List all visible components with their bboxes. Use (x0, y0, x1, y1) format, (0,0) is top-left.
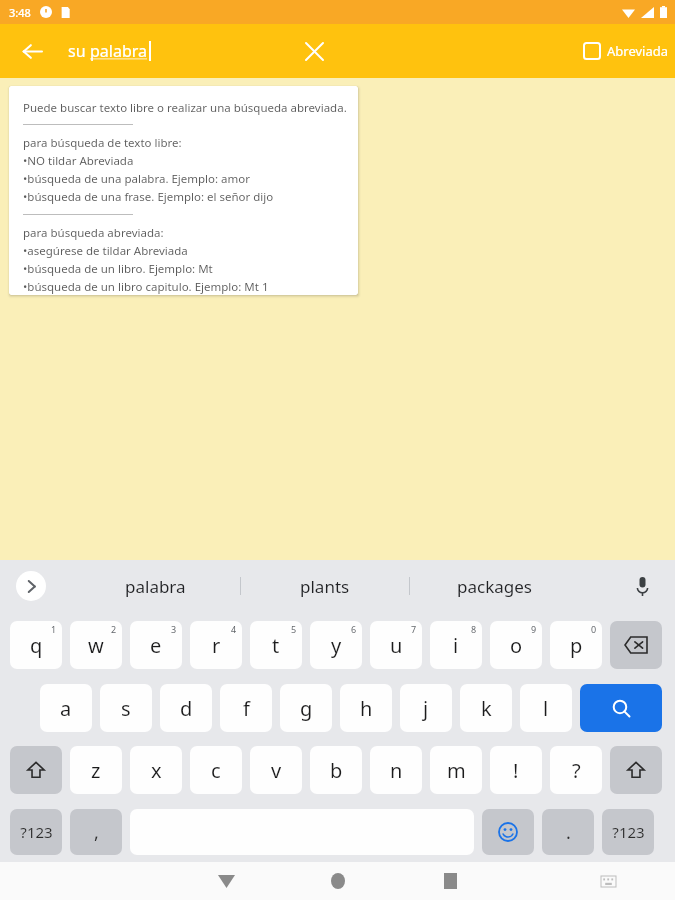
button[interactable]: b (310, 746, 362, 794)
button[interactable]: ? (550, 746, 602, 794)
staticText: para búsqueda de texto libre: (23, 135, 182, 151)
button[interactable]: e (130, 621, 182, 669)
button[interactable]: j (400, 684, 452, 732)
button[interactable]: s (100, 684, 152, 732)
button[interactable]: v (250, 746, 302, 794)
button[interactable]: Shift (610, 746, 662, 794)
staticText: •búsqueda de una frase. Ejemplo: el seño… (23, 189, 274, 205)
staticText: y (331, 632, 342, 659)
button[interactable]: Backspace (610, 621, 662, 669)
button[interactable]: plants (241, 563, 409, 609)
button[interactable]: t (250, 621, 302, 669)
staticText: . (566, 820, 571, 845)
button[interactable]: , (70, 809, 122, 855)
button[interactable]: z (70, 746, 122, 794)
staticText: Abreviada (607, 42, 669, 60)
staticText: j (423, 695, 429, 722)
button[interactable]: Switch keyboard (591, 864, 625, 898)
button[interactable]: w (70, 621, 122, 669)
staticText: •búsqueda de un libro capitulo. Ejemplo:… (23, 279, 269, 294)
staticText: v (271, 757, 282, 784)
button[interactable]: y (310, 621, 362, 669)
staticText: palabra (90, 40, 148, 62)
button[interactable]: Expand suggestions (16, 571, 46, 601)
staticText: palabra (125, 575, 186, 598)
button[interactable]: Recents (430, 862, 470, 900)
staticText: 8 (471, 623, 477, 635)
staticText: Puede buscar texto libre o realizar una … (23, 100, 347, 116)
staticText: a (60, 695, 72, 722)
button[interactable]: d (160, 684, 212, 732)
staticText: para búsqueda abreviada: (23, 225, 164, 241)
staticText: ?123 (20, 822, 53, 842)
button[interactable]: su (68, 31, 151, 71)
button[interactable]: l (520, 684, 572, 732)
button[interactable]: palabra (70, 563, 240, 609)
staticText: ? (572, 757, 581, 784)
button[interactable]: Voice input (625, 569, 659, 603)
button[interactable]: Home (318, 862, 358, 900)
staticText: , (94, 820, 99, 845)
staticText: •NO tildar Abreviada (23, 153, 134, 169)
button[interactable]: g (280, 684, 332, 732)
staticText: r (212, 632, 221, 659)
button[interactable]: n (370, 746, 422, 794)
staticText: u (390, 632, 403, 659)
button[interactable]: ! (490, 746, 542, 794)
button[interactable]: . (542, 809, 594, 855)
staticText: 3:48 (9, 5, 31, 20)
staticText: q (30, 632, 43, 659)
staticText: k (481, 695, 492, 722)
staticText: g (300, 695, 313, 722)
staticText: 3 (171, 623, 177, 635)
button[interactable]: Puede buscar texto libre o realizar una … (9, 86, 358, 295)
staticText: 5 (291, 623, 297, 635)
staticText: 9 (531, 623, 537, 635)
staticText: 7 (411, 623, 417, 635)
staticText: packages (457, 575, 532, 598)
button[interactable]: Search (580, 684, 662, 732)
staticText: p (570, 632, 583, 659)
staticText: 6 (351, 623, 357, 635)
button[interactable]: Back (10, 29, 54, 73)
button[interactable]: f (220, 684, 272, 732)
button[interactable]: Clear (292, 29, 336, 73)
button[interactable]: p (550, 621, 602, 669)
button[interactable]: ?123 (10, 809, 62, 855)
button[interactable]: u (370, 621, 422, 669)
staticText: n (390, 757, 403, 784)
button[interactable]: ?123 (602, 809, 654, 855)
staticText: ?123 (612, 822, 645, 842)
staticText: 0 (591, 623, 597, 635)
staticText: o (510, 632, 523, 659)
button[interactable]: Abreviada (584, 29, 669, 73)
staticText: x (151, 757, 162, 784)
button[interactable]: o (490, 621, 542, 669)
button[interactable]: r (190, 621, 242, 669)
button[interactable]: h (340, 684, 392, 732)
button[interactable]: m (430, 746, 482, 794)
staticText: d (180, 695, 193, 722)
staticText: i (453, 632, 459, 659)
button[interactable]: k (460, 684, 512, 732)
staticText: ! (513, 757, 519, 784)
staticText: plants (300, 575, 350, 598)
button[interactable]: i (430, 621, 482, 669)
staticText: e (150, 632, 162, 659)
button[interactable]: x (130, 746, 182, 794)
staticText: 1 (51, 623, 57, 635)
button[interactable]: Shift (10, 746, 62, 794)
button[interactable]: q (10, 621, 62, 669)
button[interactable]: Emoji (482, 809, 534, 855)
button[interactable]: Back (206, 862, 246, 900)
button[interactable]: a (40, 684, 92, 732)
staticText: m (447, 757, 466, 784)
staticText: t (272, 632, 280, 659)
staticText: b (330, 757, 343, 784)
staticText: •búsqueda de una palabra. Ejemplo: amor (23, 171, 251, 187)
staticText: •búsqueda de un libro. Ejemplo: Mt (23, 261, 213, 277)
staticText: z (91, 757, 101, 784)
button[interactable]: c (190, 746, 242, 794)
button[interactable]: packages (410, 563, 578, 609)
